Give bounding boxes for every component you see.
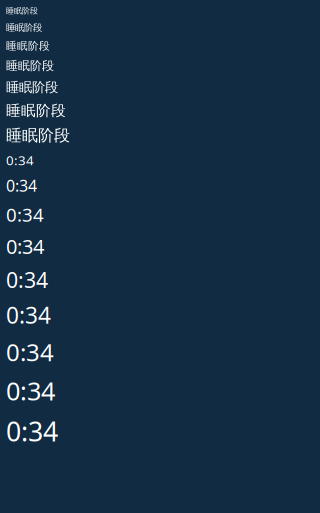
staticText: 睡眠阶段 bbox=[6, 79, 58, 95]
staticText: 0:34 bbox=[6, 413, 58, 449]
staticText: 0:34 bbox=[6, 374, 55, 407]
staticText: 0:34 bbox=[6, 300, 51, 330]
staticText: 0:34 bbox=[6, 175, 37, 196]
staticText: 睡眠阶段 bbox=[6, 125, 70, 145]
staticText: 睡眠阶段 bbox=[6, 39, 50, 52]
staticText: 睡眠阶段 bbox=[6, 58, 54, 73]
staticText: 0:34 bbox=[6, 233, 44, 259]
staticText: 0:34 bbox=[6, 202, 44, 227]
staticText: 睡眠阶段 bbox=[6, 101, 66, 119]
staticText: 睡眠阶段 bbox=[6, 6, 38, 16]
staticText: 0:34 bbox=[6, 151, 34, 169]
staticText: 0:34 bbox=[6, 336, 54, 368]
staticText: 睡眠阶段 bbox=[6, 22, 42, 33]
staticText: 0:34 bbox=[6, 265, 48, 294]
